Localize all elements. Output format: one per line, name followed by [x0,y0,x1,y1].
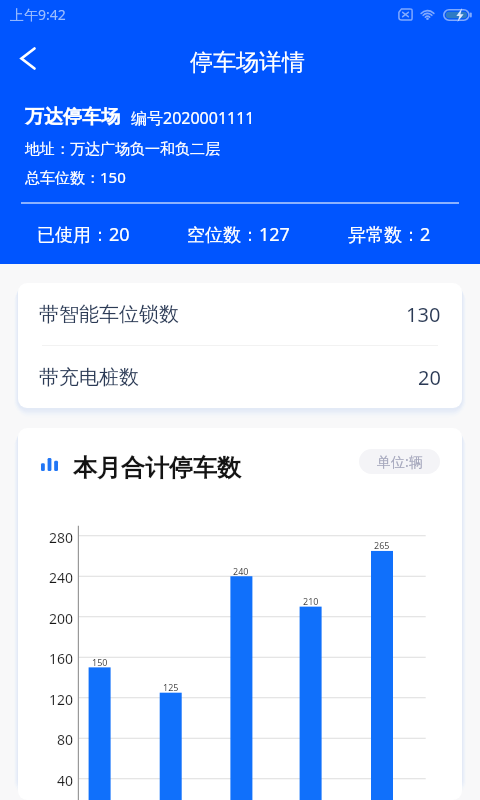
staticText: 空位数：127 [187,222,290,247]
staticText: 异常数：2 [348,222,431,247]
staticText: 万达停车场 [25,105,120,129]
button[interactable]: 带智能车位锁数 [18,283,462,345]
staticText: 停车场详情 [190,48,305,77]
staticText: 20 [418,364,441,391]
staticText: 总车位数：150 [25,167,126,187]
staticText: 上午9:42 [10,5,66,24]
staticText: 240 [49,568,74,587]
staticText: 带充电桩数 [39,365,139,390]
staticText: 120 [49,690,74,709]
staticText: 130 [406,301,441,328]
staticText: 带智能车位锁数 [39,302,179,327]
staticText: 150 [92,656,108,668]
staticText: 200 [49,609,74,628]
staticText: 编号2020001111 [131,107,255,129]
staticText: 40 [57,771,74,790]
staticText: 280 [49,528,74,547]
staticText: 本月合计停车数 [73,453,241,483]
staticText: 210 [303,595,319,607]
staticText: 单位:辆 [377,452,423,471]
button[interactable]: Back [0,31,55,86]
button[interactable]: 带充电桩数 [18,346,462,408]
staticText: 地址：万达广场负一和负二层 [25,140,220,159]
staticText: 265 [374,539,390,551]
button[interactable]: 单位:辆 [359,449,440,474]
staticText: 80 [57,730,74,749]
staticText: 已使用：20 [37,222,130,247]
staticText: 160 [49,649,74,668]
staticText: 125 [163,681,179,693]
staticText: 240 [233,565,249,577]
